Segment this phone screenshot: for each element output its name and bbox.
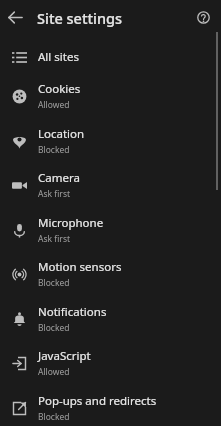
button[interactable]: Back <box>3 5 28 30</box>
button[interactable]: Pop-ups and redirects <box>0 390 221 426</box>
button[interactable]: Location <box>0 123 221 159</box>
button[interactable]: JavaScript <box>0 345 221 381</box>
staticText: Motion sensors <box>38 259 122 275</box>
button[interactable]: Cookies <box>0 78 221 114</box>
staticText: Ask first <box>38 233 71 245</box>
staticText: Blocked <box>38 277 70 289</box>
button[interactable]: Notifications <box>0 301 221 337</box>
staticText: Blocked <box>38 411 70 423</box>
button[interactable]: Help <box>191 5 216 30</box>
staticText: Allowed <box>38 366 70 378</box>
staticText: All sites <box>38 49 79 65</box>
button[interactable]: Motion sensors <box>0 256 221 292</box>
staticText: Microphone <box>38 215 104 231</box>
staticText: Pop-ups and redirects <box>38 393 157 409</box>
button[interactable]: Microphone <box>0 212 221 248</box>
staticText: Site settings <box>37 8 123 28</box>
staticText: Ask first <box>38 188 71 200</box>
staticText: Allowed <box>38 99 70 111</box>
staticText: JavaScript <box>38 348 91 364</box>
staticText: Cookies <box>38 81 81 97</box>
button[interactable]: Camera <box>0 167 221 203</box>
staticText: Blocked <box>38 322 70 334</box>
button[interactable]: All sites <box>0 44 221 70</box>
staticText: Location <box>38 126 85 142</box>
staticText: Blocked <box>38 144 70 156</box>
staticText: Notifications <box>38 304 107 320</box>
staticText: Camera <box>38 170 80 186</box>
